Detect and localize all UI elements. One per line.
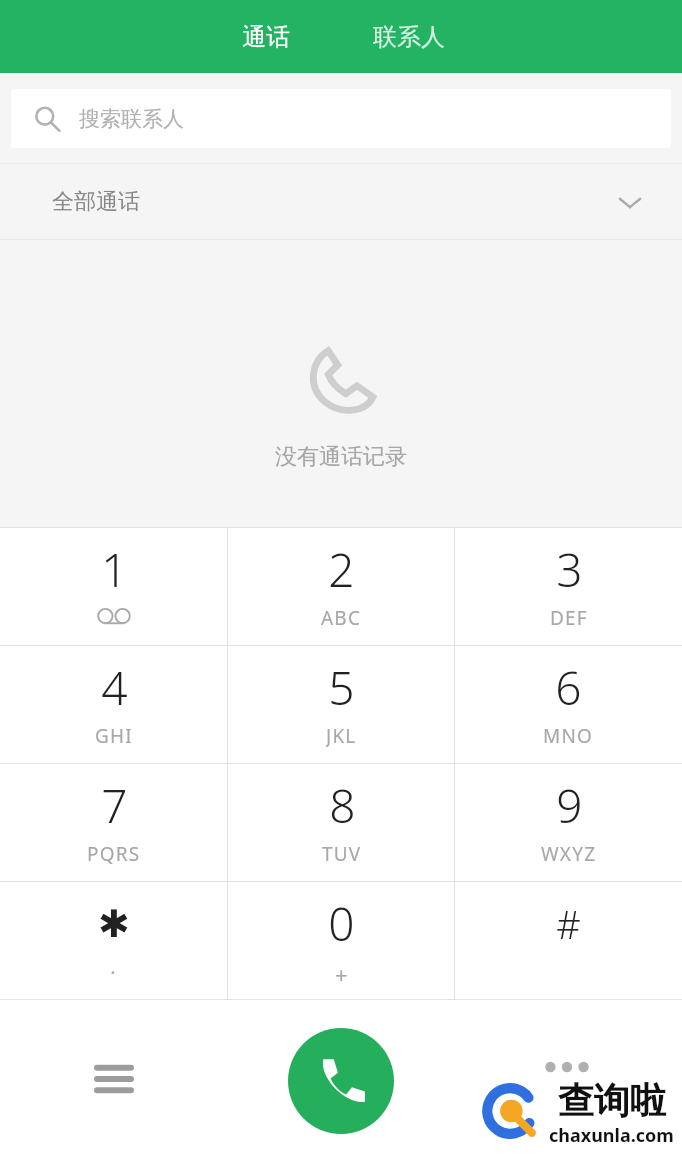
staticText: 0 — [328, 892, 355, 955]
staticText: MNO — [543, 723, 594, 747]
staticText: 4 — [101, 656, 128, 719]
staticText: ABC — [321, 605, 362, 629]
button[interactable]: 8 — [228, 764, 455, 881]
button[interactable]: 3 — [455, 528, 682, 645]
staticText: 查询啦 — [558, 1078, 666, 1123]
button[interactable]: 7 — [0, 764, 228, 881]
staticText: PQRS — [87, 841, 141, 865]
button[interactable]: 通话 — [210, 0, 322, 73]
button[interactable]: 搜索联系人 — [11, 89, 671, 148]
staticText: , — [110, 950, 118, 974]
button[interactable]: 9 — [455, 764, 682, 881]
staticText: 2 — [328, 538, 355, 601]
staticText: 没有通话记录 — [275, 443, 407, 471]
staticText: 联系人 — [373, 22, 445, 52]
staticText: DEF — [550, 605, 588, 629]
staticText: JKL — [326, 723, 357, 747]
button[interactable]: 2 — [228, 528, 455, 645]
staticText: 7 — [101, 774, 128, 837]
button[interactable]: 5 — [228, 646, 455, 763]
button[interactable]: Menu — [78, 1043, 150, 1115]
staticText: 全部通话 — [52, 188, 140, 216]
button[interactable]: Expand filter — [600, 172, 660, 232]
staticText: WXYZ — [541, 841, 597, 865]
staticText: 1 — [101, 538, 128, 601]
staticText: 9 — [556, 774, 583, 837]
button[interactable]: 0 — [228, 882, 455, 999]
button[interactable]: 6 — [455, 646, 682, 763]
button[interactable]: 1 — [0, 528, 228, 645]
staticText: 搜索联系人 — [79, 106, 184, 132]
staticText: 通话 — [242, 22, 290, 52]
staticText: ✱ — [98, 902, 130, 946]
staticText: # — [556, 898, 581, 950]
staticText: 8 — [329, 774, 356, 837]
staticText: 3 — [556, 538, 583, 601]
staticText: TUV — [322, 841, 362, 865]
button[interactable]: ✱ — [0, 882, 228, 999]
button[interactable]: 4 — [0, 646, 228, 763]
button[interactable]: More options — [536, 1036, 598, 1098]
staticText: 5 — [328, 656, 355, 719]
staticText: GHI — [95, 723, 133, 747]
button[interactable]: # — [455, 882, 682, 999]
button[interactable]: 全部通话 — [0, 164, 682, 239]
staticText: 6 — [555, 656, 582, 719]
button[interactable]: Call — [288, 1028, 394, 1134]
staticText: + — [335, 959, 349, 983]
staticText: chaxunla.com — [549, 1123, 674, 1148]
button[interactable]: 联系人 — [344, 0, 474, 73]
